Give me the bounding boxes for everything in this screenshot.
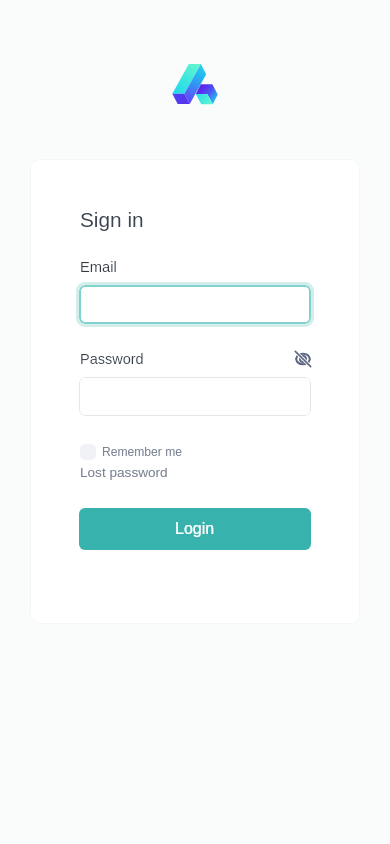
- button[interactable]: Login: [79, 508, 311, 550]
- button[interactable]: Remember me: [80, 444, 182, 460]
- staticText: Password: [80, 351, 144, 367]
- staticText: Remember me: [102, 445, 182, 459]
- button[interactable]: [79, 377, 311, 416]
- button[interactable]: [79, 285, 311, 324]
- staticText: Sign in: [80, 208, 144, 231]
- staticText: Login: [175, 520, 215, 538]
- staticText: Email: [80, 259, 117, 275]
- button[interactable]: Show password: [292, 348, 314, 370]
- button[interactable]: Lost password: [80, 465, 168, 480]
